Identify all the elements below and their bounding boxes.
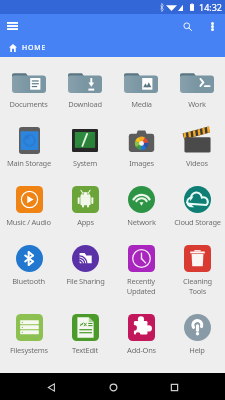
button[interactable]: Videos [169, 118, 225, 177]
staticText: Filesystems [10, 345, 48, 355]
button[interactable]: System [57, 118, 113, 177]
staticText: File Sharing [66, 276, 105, 286]
staticText: Recently Updated [117, 276, 165, 296]
staticText: Cloud Storage [174, 217, 221, 227]
staticText: Apps [77, 217, 94, 227]
button[interactable]: Filesystems [0, 305, 57, 364]
staticText: Add-Ons [127, 345, 156, 355]
button[interactable]: Network [113, 177, 169, 236]
button[interactable]: Images [113, 118, 169, 177]
staticText: Videos [186, 158, 208, 168]
staticText: Bluetooth [12, 276, 45, 286]
button[interactable]: More options [203, 17, 221, 35]
button[interactable]: Bluetooth [0, 236, 57, 295]
button[interactable]: Cloud Storage [169, 177, 225, 236]
staticText: Documents [9, 99, 48, 109]
button[interactable]: Recent apps [163, 376, 185, 398]
staticText: Help [189, 345, 205, 355]
staticText: Music / Audio [6, 217, 51, 227]
button[interactable]: Back [40, 376, 62, 398]
button[interactable]: Work [169, 59, 225, 118]
button[interactable]: Apps [57, 177, 113, 236]
button[interactable]: TextEdit [57, 305, 113, 364]
button[interactable]: Download [57, 59, 113, 118]
button[interactable]: Cleaning Tools [169, 236, 225, 305]
button[interactable]: Documents [0, 59, 57, 118]
button[interactable]: HOME [9, 41, 47, 55]
staticText: Work [188, 99, 206, 109]
staticText: Network [127, 217, 156, 227]
staticText: Media [131, 99, 152, 109]
button[interactable]: File Sharing [57, 236, 113, 295]
button[interactable]: Music / Audio [0, 177, 57, 236]
button[interactable]: Help [169, 305, 225, 364]
button[interactable]: Home [102, 376, 124, 398]
button[interactable]: Media [113, 59, 169, 118]
button[interactable]: Main Storage [0, 118, 57, 177]
button[interactable]: Open navigation drawer [1, 15, 23, 37]
staticText: Main Storage [7, 158, 51, 168]
button[interactable]: Recently Updated [113, 236, 169, 305]
staticText: TextEdit [72, 345, 98, 355]
staticText: Download [68, 99, 102, 109]
staticText: Cleaning Tools [183, 276, 212, 296]
staticText: 14:32 [199, 1, 223, 13]
button[interactable]: Add-Ons [113, 305, 169, 364]
staticText: Images [129, 158, 154, 168]
staticText: HOME [22, 43, 47, 53]
staticText: System [73, 158, 97, 168]
button[interactable]: Search [176, 16, 198, 36]
